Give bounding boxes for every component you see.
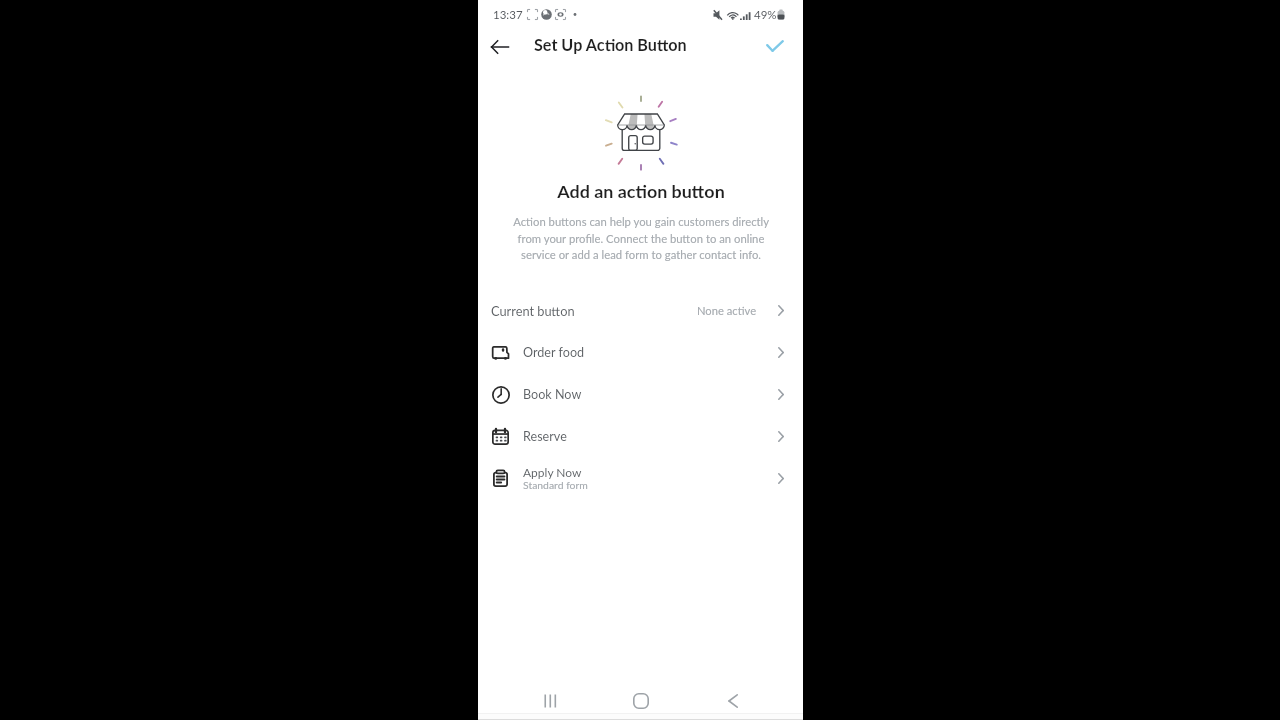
- staticText: Set Up Action Button: [534, 35, 687, 54]
- staticText: Add an action button: [557, 180, 725, 201]
- staticText: Action buttons can help you gain custome…: [510, 215, 772, 261]
- button[interactable]: Back: [687, 688, 779, 713]
- staticText: Standard form: [523, 479, 588, 491]
- staticText: Reserve: [523, 429, 567, 444]
- button[interactable]: Apply Now: [478, 457, 803, 499]
- button[interactable]: Navigate up: [484, 31, 516, 63]
- button[interactable]: Done: [759, 30, 791, 62]
- button[interactable]: Current button: [478, 289, 803, 331]
- button[interactable]: Recent apps: [502, 688, 595, 713]
- button[interactable]: Home: [595, 688, 687, 713]
- staticText: Book Now: [523, 387, 582, 402]
- staticText: Order food: [523, 345, 585, 360]
- staticText: 13:37: [493, 8, 523, 22]
- button[interactable]: Order food: [478, 331, 803, 373]
- staticText: 49%: [754, 8, 777, 22]
- button[interactable]: Reserve: [478, 415, 803, 457]
- staticText: Apply Now: [523, 465, 582, 479]
- staticText: None active: [697, 304, 757, 317]
- button[interactable]: Book Now: [478, 373, 803, 415]
- staticText: Current button: [491, 303, 575, 318]
